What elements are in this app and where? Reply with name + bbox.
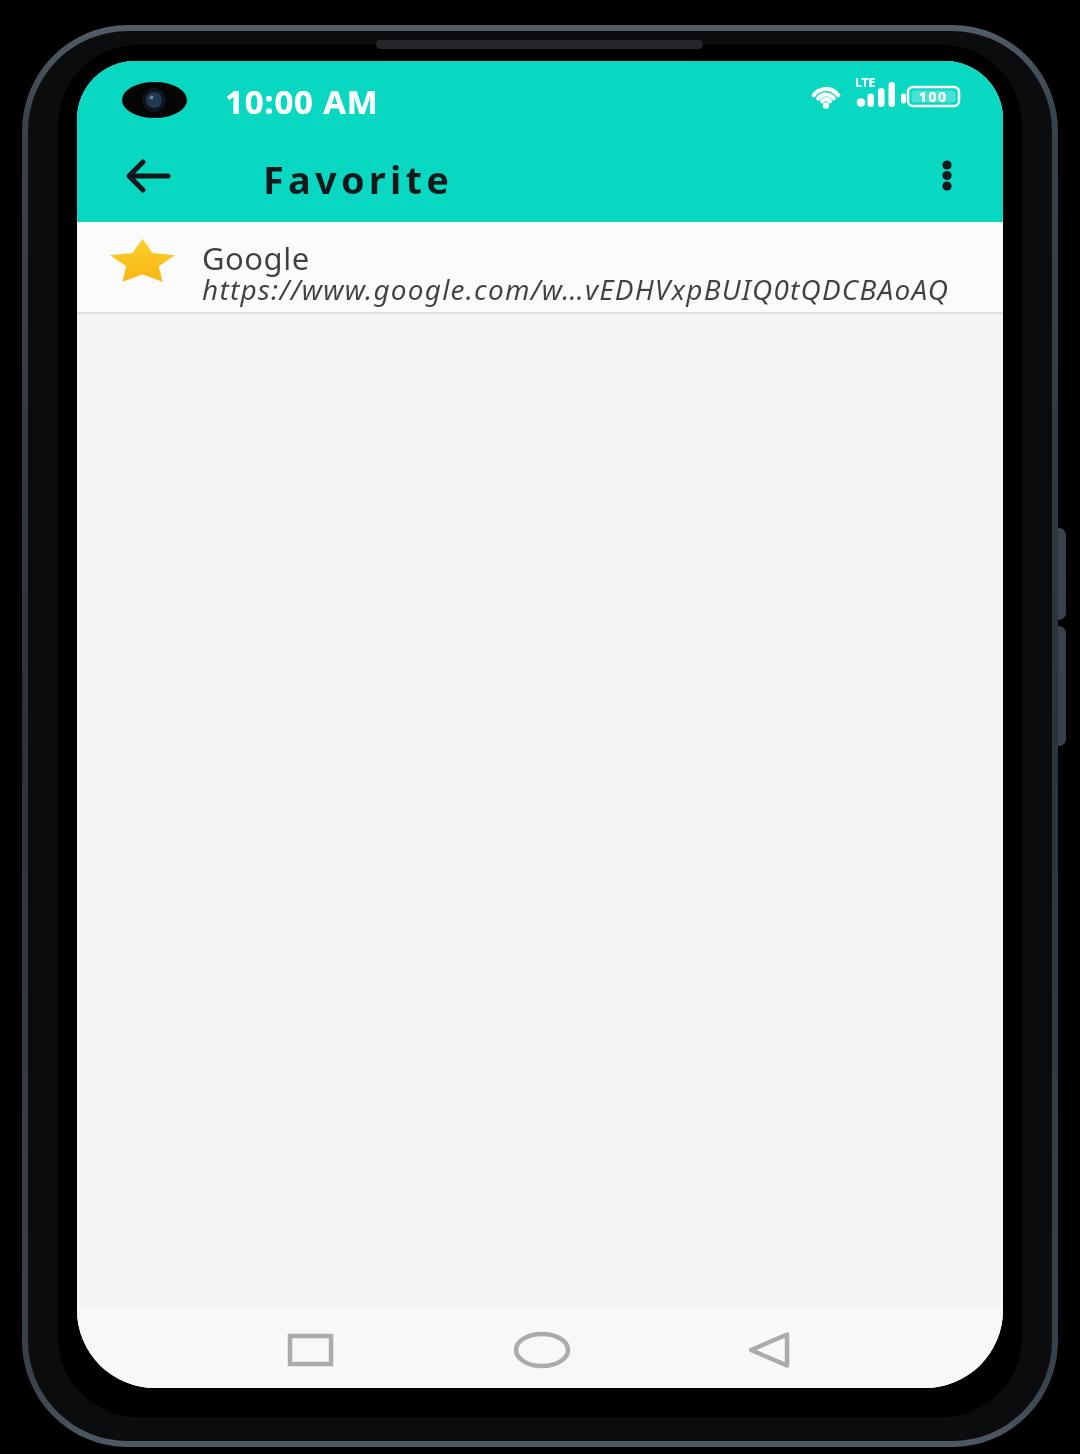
button[interactable] [501, 1316, 583, 1382]
button[interactable] [917, 141, 977, 211]
staticText: https://www.google.com/w…vEDHVxpBUIQ0tQD… [202, 270, 950, 308]
staticText: Google [202, 237, 310, 279]
staticText: 100 [919, 87, 948, 106]
button[interactable] [728, 1316, 810, 1382]
button[interactable] [77, 222, 1003, 312]
staticText: Favorite [263, 153, 454, 205]
staticText: LTE [855, 74, 876, 90]
button[interactable] [270, 1316, 352, 1382]
button[interactable] [107, 141, 187, 211]
staticText: 10:00 AM [225, 79, 379, 124]
